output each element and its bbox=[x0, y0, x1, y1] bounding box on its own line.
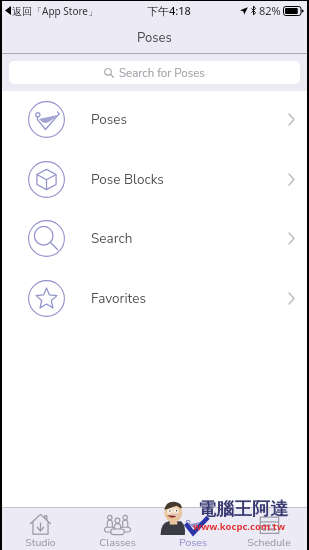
button[interactable]: Poses bbox=[2, 90, 307, 148]
staticText: Studio bbox=[25, 535, 56, 549]
staticText: Poses bbox=[137, 29, 172, 47]
button[interactable]: Favorites bbox=[2, 269, 307, 327]
button[interactable]: Schedule bbox=[231, 508, 307, 550]
staticText: Schedule bbox=[247, 535, 291, 549]
staticText: 82% bbox=[259, 3, 281, 18]
button[interactable]: Poses bbox=[155, 508, 231, 550]
staticText: 電腦王阿達 bbox=[198, 498, 288, 521]
button[interactable]: Studio bbox=[2, 508, 79, 550]
staticText: Pose Blocks bbox=[91, 170, 164, 188]
button[interactable]: Classes bbox=[79, 508, 155, 550]
staticText: Search bbox=[91, 229, 133, 247]
staticText: 下午4:18 bbox=[147, 3, 191, 18]
button[interactable]: Pose Blocks bbox=[2, 150, 307, 208]
staticText: Poses bbox=[91, 110, 127, 128]
button[interactable]: Search for Poses bbox=[9, 61, 300, 84]
staticText: Classes bbox=[99, 535, 136, 549]
staticText: Poses bbox=[179, 535, 207, 549]
button[interactable]: Search bbox=[2, 209, 307, 267]
staticText: Favorites bbox=[91, 289, 146, 307]
staticText: Search for Poses bbox=[119, 65, 205, 81]
staticText: 返回「App Store」 bbox=[12, 4, 99, 18]
staticText: www.kocpc.com.tw bbox=[193, 520, 286, 533]
